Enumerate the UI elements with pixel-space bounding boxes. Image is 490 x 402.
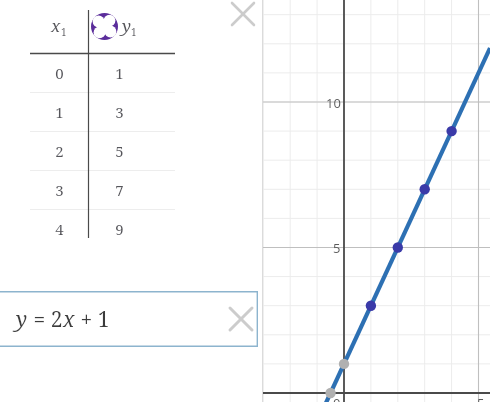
staticText: 0 [55,63,64,83]
staticText: 5 [333,239,341,257]
staticText: 9 [115,219,124,239]
staticText: 5 [477,394,485,402]
staticText: 3 [55,180,64,200]
staticText: 10 [326,94,341,112]
staticText: 1 [115,63,124,83]
button[interactable]: y [0,291,258,347]
button[interactable]: 3 [89,101,149,123]
staticText: 1 [61,25,67,39]
staticText: 2 [55,141,64,161]
staticText: = 2 [28,305,63,334]
button[interactable]: 7 [89,179,149,201]
staticText: 5 [115,141,124,161]
button[interactable]: Delete expression [228,306,254,332]
staticText: 4 [55,219,64,239]
button[interactable]: 4 [30,218,88,240]
staticText: y [122,14,131,37]
staticText: 7 [115,180,124,200]
button[interactable]: 0 [30,62,88,84]
button[interactable]: Delete table [230,1,256,27]
button[interactable]: 10 [263,0,490,402]
staticText: x [51,14,61,37]
staticText: 0 [333,394,341,402]
button[interactable]: 1 [89,62,149,84]
staticText: x [63,305,75,334]
button[interactable]: 1 [30,101,88,123]
button[interactable]: 5 [89,140,149,162]
button[interactable]: 3 [30,179,88,201]
button[interactable]: 2 [30,140,88,162]
button[interactable]: Point style [91,13,118,40]
staticText: 3 [115,102,124,122]
staticText: 1 [55,102,64,122]
staticText: 1 [131,25,137,39]
staticText: + 1 [75,305,110,334]
button[interactable]: 9 [89,218,149,240]
staticText: y [16,305,28,334]
